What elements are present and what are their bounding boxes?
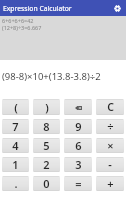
- staticText: 9: [75, 119, 82, 134]
- staticText: 6: [75, 138, 82, 153]
- staticText: 8: [43, 119, 50, 134]
- button[interactable]: (: [2, 99, 29, 115]
- button[interactable]: 1: [2, 157, 29, 172]
- staticText: 6+6+6+6=42: [2, 17, 34, 24]
- button[interactable]: -: [96, 157, 124, 172]
- staticText: 4: [12, 138, 19, 153]
- staticText: Expression Calculator: [3, 4, 72, 13]
- staticText: ×: [107, 138, 114, 153]
- button[interactable]: ): [33, 99, 60, 115]
- staticText: 1: [12, 157, 19, 172]
- button[interactable]: 5: [33, 138, 60, 153]
- staticText: 2: [43, 157, 50, 172]
- staticText: ): [45, 100, 49, 115]
- button[interactable]: ÷: [96, 119, 124, 134]
- staticText: .: [14, 176, 18, 191]
- staticText: (98-8)×10+(13.8-3.8)÷2: [2, 70, 101, 83]
- button[interactable]: 8: [33, 119, 60, 134]
- button[interactable]: 3: [64, 157, 92, 172]
- staticText: 5: [43, 138, 50, 153]
- button[interactable]: =: [64, 176, 92, 191]
- staticText: C: [107, 100, 114, 114]
- staticText: ÷: [107, 119, 114, 134]
- button[interactable]: Backspace: [64, 99, 92, 115]
- button[interactable]: ×: [96, 138, 124, 153]
- button[interactable]: 6: [64, 138, 92, 153]
- staticText: +: [107, 176, 114, 191]
- staticText: (: [14, 100, 18, 115]
- staticText: 7: [12, 119, 19, 134]
- button[interactable]: .: [2, 176, 29, 191]
- button[interactable]: 7: [2, 119, 29, 134]
- staticText: =: [75, 176, 82, 191]
- staticText: -: [108, 157, 112, 172]
- staticText: 3: [75, 157, 82, 172]
- button[interactable]: C: [96, 99, 124, 115]
- button[interactable]: 4: [2, 138, 29, 153]
- button[interactable]: 0: [33, 176, 60, 191]
- staticText: 0: [43, 176, 50, 191]
- button[interactable]: +: [96, 176, 124, 191]
- button[interactable]: Settings: [113, 4, 122, 13]
- button[interactable]: 2: [33, 157, 60, 172]
- button[interactable]: 9: [64, 119, 92, 134]
- staticText: (12+8)÷3=6.667: [2, 24, 42, 31]
